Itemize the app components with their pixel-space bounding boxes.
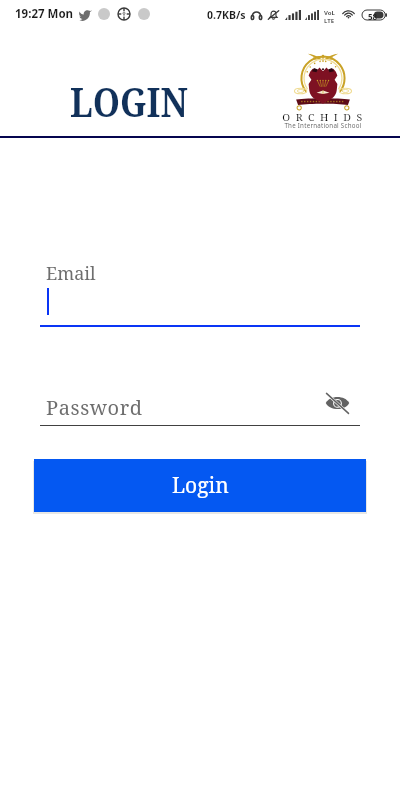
staticText: 58: [368, 11, 378, 21]
staticText: VoL: [324, 9, 335, 17]
staticText: 19:27 Mon: [15, 6, 74, 22]
staticText: The International School: [283, 121, 363, 129]
button[interactable]: Login: [34, 459, 366, 512]
button[interactable]: Show password: [322, 387, 353, 418]
staticText: ORCHIDS: [281, 111, 369, 124]
staticText: LOGIN: [70, 74, 188, 128]
staticText: Email: [46, 261, 96, 286]
staticText: LTE: [324, 17, 335, 25]
staticText: 0.7KB/s: [207, 8, 246, 22]
staticText: Password: [46, 394, 143, 421]
staticText: Login: [172, 471, 229, 500]
